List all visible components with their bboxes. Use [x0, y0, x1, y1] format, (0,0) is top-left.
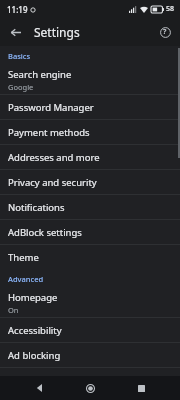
button[interactable]: Payment methods: [0, 120, 180, 144]
button[interactable]: Privacy and security: [0, 170, 180, 194]
staticText: Google: [8, 82, 34, 92]
button[interactable]: Search engine: [0, 66, 180, 94]
staticText: Homepage: [8, 291, 58, 304]
staticText: Search engine: [8, 68, 72, 81]
button[interactable]: Accessibility: [0, 318, 180, 342]
button[interactable]: AdBlock settings: [0, 220, 180, 244]
staticText: Payment methods: [8, 126, 90, 139]
staticText: Notifications: [8, 201, 65, 214]
staticText: Privacy and security: [8, 176, 97, 189]
staticText: ?: [163, 27, 167, 37]
staticText: Ad blocking: [8, 349, 61, 362]
button[interactable]: Recent apps: [130, 377, 152, 399]
staticText: Basics: [8, 51, 31, 61]
staticText: Addresses and more: [8, 151, 100, 164]
button[interactable]: Theme: [0, 245, 180, 269]
staticText: On: [8, 305, 19, 315]
staticText: 58: [166, 4, 175, 14]
button[interactable]: Password Manager: [0, 95, 180, 119]
staticText: AdBlock settings: [8, 226, 82, 239]
staticText: Settings: [34, 24, 80, 40]
button[interactable]: Homepage: [0, 289, 180, 317]
staticText: Accessibility: [8, 324, 62, 337]
staticText: 11:19: [7, 4, 28, 15]
button[interactable]: Ad blocking: [0, 343, 180, 367]
button[interactable]: Help: [155, 22, 175, 42]
button[interactable]: Home: [79, 377, 101, 399]
staticText: Advanced: [8, 274, 44, 284]
staticText: Theme: [8, 251, 39, 264]
staticText: Password Manager: [8, 101, 94, 114]
button[interactable]: Back: [29, 377, 51, 399]
button[interactable]: Addresses and more: [0, 145, 180, 169]
button[interactable]: Notifications: [0, 195, 180, 219]
button[interactable]: Back: [4, 21, 26, 43]
